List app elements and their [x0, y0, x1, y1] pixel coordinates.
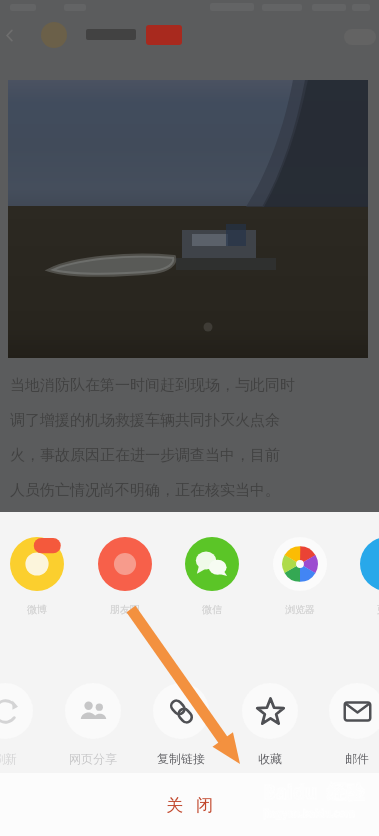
staticText: 微信 — [202, 603, 222, 616]
staticText: 微博 — [27, 603, 47, 616]
staticText: 浏览器 — [285, 603, 315, 616]
staticText: 朋友圈 — [110, 603, 140, 616]
button[interactable]: 更多 — [344, 537, 379, 616]
staticText: 收藏 — [258, 751, 282, 766]
staticText: 复制链接 — [157, 751, 205, 766]
staticText: 网页分享 — [69, 751, 117, 766]
staticText: 刷新 — [0, 751, 17, 766]
button[interactable]: 邮件 — [314, 683, 379, 766]
button[interactable]: 关 闭 — [0, 773, 379, 836]
staticText: 当地消防队在第一时间赶到现场，与此同时 — [10, 376, 295, 395]
button[interactable]: 朋友圈 — [82, 537, 168, 616]
staticText: 火，事故原因正在进一步调查当中，目前 — [10, 446, 280, 465]
staticText: 更多 — [377, 603, 379, 616]
button[interactable]: 复制链接 — [138, 683, 224, 766]
button[interactable]: 网页分享 — [50, 683, 136, 766]
button[interactable]: 浏览器 — [257, 537, 343, 616]
button[interactable]: 收藏 — [227, 683, 313, 766]
staticText: 关 闭 — [166, 793, 214, 816]
staticText: 人员伤亡情况尚不明确，正在核实当中。 — [10, 481, 280, 500]
button[interactable]: Author avatar — [41, 22, 67, 48]
button[interactable]: 刷新 — [0, 683, 48, 766]
staticText: 邮件 — [345, 751, 369, 766]
button[interactable]: Follow — [146, 25, 182, 45]
button[interactable]: 微信 — [169, 537, 255, 616]
staticText: 调了增援的机场救援车辆共同扑灭火点余 — [10, 411, 280, 430]
button[interactable]: 微博 — [0, 537, 80, 616]
button[interactable]: Back — [0, 22, 22, 48]
